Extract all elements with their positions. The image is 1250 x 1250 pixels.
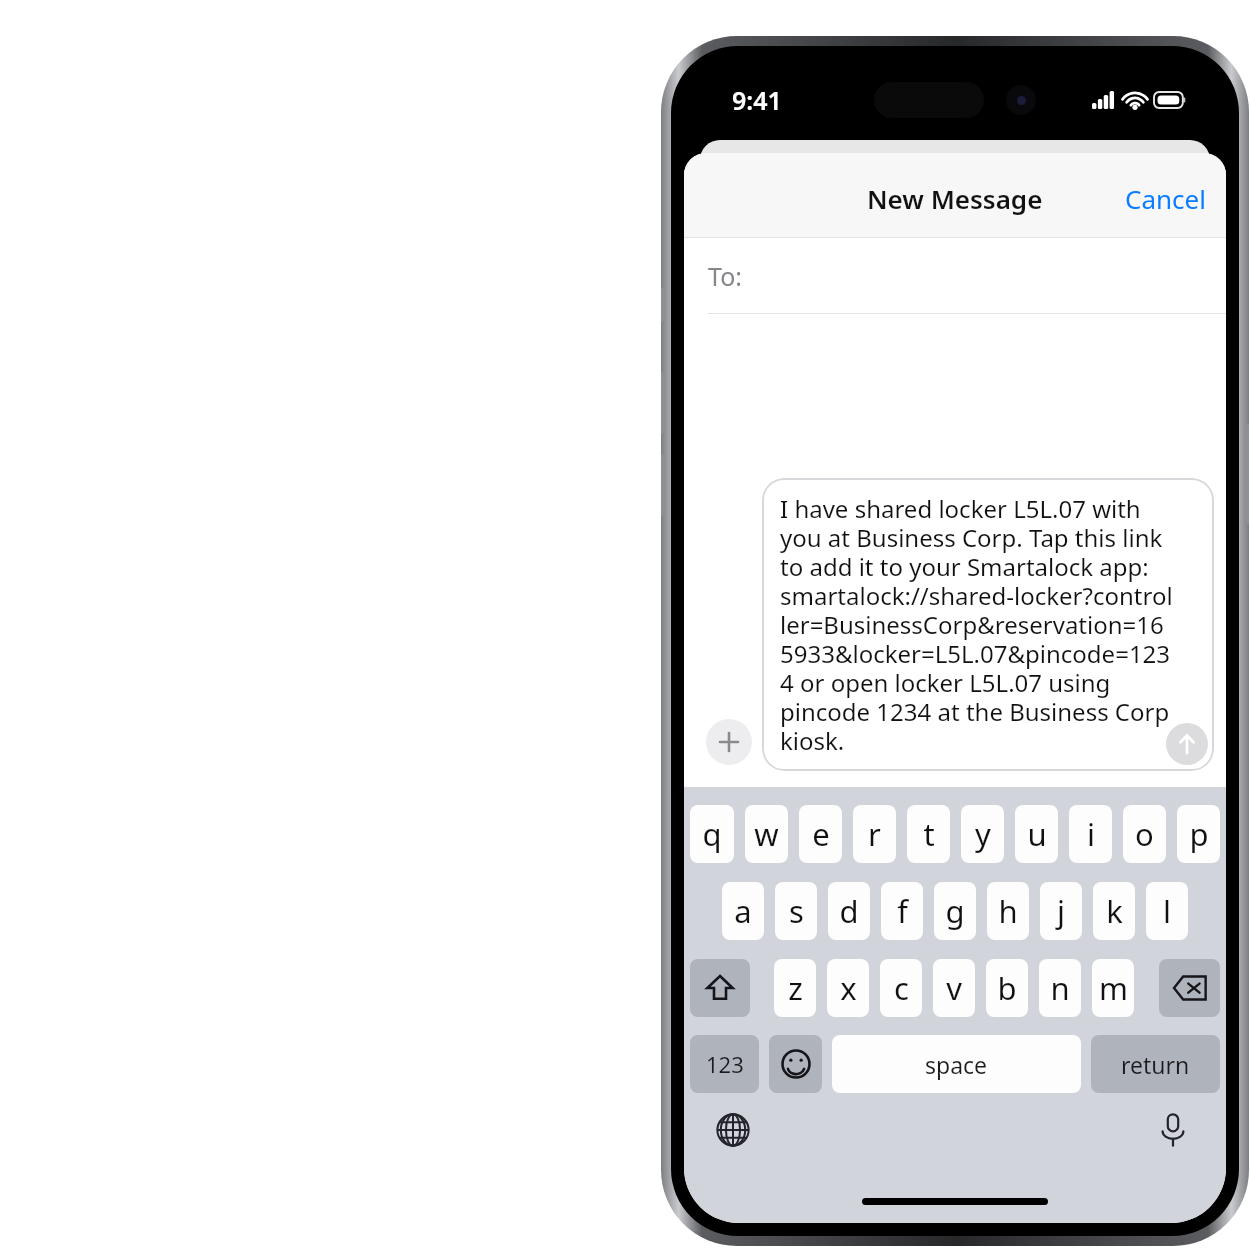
- button[interactable]: b: [986, 959, 1028, 1017]
- staticText: j: [1057, 890, 1065, 932]
- button[interactable]: c: [880, 959, 922, 1017]
- button[interactable]: Send: [1166, 723, 1208, 765]
- staticText: g: [945, 890, 965, 932]
- staticText: k: [1106, 890, 1123, 932]
- staticText: To:: [708, 259, 742, 293]
- button[interactable]: To:: [684, 238, 1226, 314]
- button[interactable]: e: [799, 805, 842, 863]
- button[interactable]: h: [987, 882, 1029, 940]
- button[interactable]: Cancel: [1105, 171, 1226, 226]
- staticText: d: [839, 890, 859, 932]
- staticText: i: [1087, 813, 1095, 855]
- staticText: z: [788, 967, 803, 1009]
- staticText: t: [923, 813, 935, 855]
- button[interactable]: return: [1091, 1035, 1220, 1093]
- button[interactable]: p: [1177, 805, 1220, 863]
- staticText: o: [1135, 813, 1154, 855]
- button[interactable]: k: [1093, 882, 1135, 940]
- staticText: a: [734, 890, 752, 932]
- button[interactable]: o: [1123, 805, 1166, 863]
- staticText: w: [754, 813, 779, 855]
- staticText: return: [1121, 1049, 1190, 1080]
- button[interactable]: 123: [690, 1035, 759, 1093]
- button[interactable]: g: [934, 882, 976, 940]
- staticText: Cancel: [1125, 181, 1206, 216]
- button[interactable]: s: [775, 882, 817, 940]
- button[interactable]: l: [1146, 882, 1188, 940]
- button[interactable]: t: [907, 805, 950, 863]
- button[interactable]: n: [1039, 959, 1081, 1017]
- staticText: c: [894, 967, 909, 1009]
- staticText: u: [1027, 813, 1047, 855]
- button[interactable]: j: [1040, 882, 1082, 940]
- button[interactable]: Emoji: [769, 1035, 822, 1093]
- button[interactable]: Add attachment: [706, 719, 752, 765]
- staticText: h: [998, 890, 1018, 932]
- button[interactable]: w: [745, 805, 788, 863]
- button[interactable]: Change keyboard: [710, 1107, 756, 1153]
- button[interactable]: space: [832, 1035, 1081, 1093]
- staticText: b: [997, 967, 1017, 1009]
- button[interactable]: Dictate: [1150, 1107, 1196, 1153]
- staticText: s: [789, 890, 804, 932]
- button[interactable]: y: [961, 805, 1004, 863]
- staticText: 9:41: [732, 83, 782, 117]
- staticText: e: [812, 813, 830, 855]
- staticText: 123: [706, 1049, 744, 1079]
- staticText: q: [702, 813, 722, 855]
- staticText: New Message: [867, 181, 1043, 216]
- button[interactable]: u: [1015, 805, 1058, 863]
- staticText: space: [925, 1049, 988, 1080]
- button[interactable]: I have shared locker L5L.07 with you at …: [762, 478, 1214, 771]
- staticText: y: [975, 813, 991, 855]
- staticText: m: [1099, 967, 1128, 1009]
- staticText: I have shared locker L5L.07 with you at …: [780, 492, 1174, 757]
- staticText: l: [1163, 890, 1171, 932]
- button[interactable]: f: [881, 882, 923, 940]
- button[interactable]: Backspace: [1159, 959, 1220, 1017]
- button[interactable]: m: [1092, 959, 1134, 1017]
- staticText: r: [868, 813, 881, 855]
- button[interactable]: i: [1069, 805, 1112, 863]
- button[interactable]: q: [690, 805, 734, 863]
- staticText: n: [1050, 967, 1070, 1009]
- button[interactable]: z: [774, 959, 816, 1017]
- button[interactable]: Shift: [690, 959, 750, 1017]
- staticText: x: [840, 967, 857, 1009]
- staticText: f: [897, 890, 908, 932]
- button[interactable]: v: [933, 959, 975, 1017]
- staticText: p: [1189, 813, 1209, 855]
- staticText: v: [946, 967, 962, 1009]
- button[interactable]: x: [827, 959, 869, 1017]
- button[interactable]: d: [828, 882, 870, 940]
- button[interactable]: a: [722, 882, 764, 940]
- button[interactable]: r: [853, 805, 896, 863]
